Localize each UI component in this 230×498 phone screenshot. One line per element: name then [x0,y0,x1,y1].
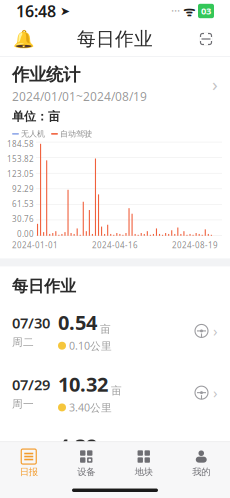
staticText: 周日 [12,459,34,472]
staticText: 3.40公里 [69,400,112,415]
button[interactable]: 通知 [9,24,39,54]
staticText: 2024-01-01 [12,240,58,250]
staticText: › [212,72,218,96]
button[interactable]: 作业统计 [0,57,230,109]
staticText: 92.29 [12,183,34,194]
staticText: 2024-08-19 [172,240,218,250]
staticText: › [209,321,218,341]
staticText: 亩 [100,322,111,336]
staticText: 153.82 [7,153,34,164]
staticText: 0.54 [58,309,97,336]
staticText: 无人机 [21,129,45,139]
staticText: 自动驾驶 [60,129,92,139]
staticText: 07/28 [12,437,50,456]
staticText: 周二 [12,336,34,349]
staticText: 30.76 [12,213,34,224]
staticText: 地块 [135,466,153,477]
button[interactable]: 我的 [172,447,230,479]
staticText: 每日作业 [12,276,76,296]
staticText: 07/29 [12,375,50,394]
staticText: 16:48 [16,0,56,22]
staticText: 🔔 [13,29,35,49]
staticText: 亩 [111,384,122,397]
button[interactable]: 设备 [57,447,115,479]
staticText: 每日作业 [77,27,153,50]
staticText: 作业统计 [12,64,80,85]
staticText: 2024/01/01~2024/08/19 [12,88,147,104]
staticText: 184.58 [7,138,34,149]
staticText: 单位：亩 [12,109,60,124]
staticText: 2024-04-16 [92,240,138,250]
staticText: 07/30 [12,313,50,333]
staticText: 10.32 [58,371,108,397]
staticText: 4.32 [58,432,97,459]
button[interactable]: 地块 [115,447,172,479]
staticText: 61.53 [12,198,34,209]
staticText: 周一 [12,397,34,410]
staticText: 1.80公里 [69,462,112,476]
button[interactable]: 07/24 [0,485,230,498]
button[interactable]: 日报 [0,447,57,479]
staticText: 设备 [77,466,95,477]
staticText: › [209,383,218,402]
staticText: 0.10公里 [69,339,112,353]
staticText: 03 [201,5,211,17]
staticText: ᯤ [180,2,198,20]
staticText: ··· [171,3,180,19]
button[interactable]: 扫一扫 [191,24,221,54]
staticText: 日报 [20,466,38,477]
button[interactable]: 07/29 [0,362,230,423]
staticText: ➤ [56,4,70,18]
button[interactable]: 07/28 [0,423,230,485]
button[interactable]: 07/30 [0,300,230,362]
staticText: 我的 [192,466,210,477]
staticText: 0.00 [17,228,34,239]
staticText: 123.05 [7,168,34,179]
